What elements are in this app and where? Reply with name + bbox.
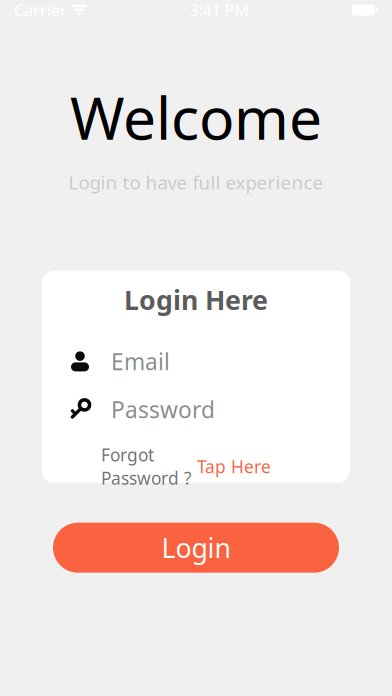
button[interactable]: Tap Here: [192, 455, 271, 478]
staticText: Login: [161, 530, 230, 565]
staticText: Login Here: [124, 282, 268, 317]
staticText: 3:41 PM: [189, 0, 249, 21]
staticText: Password: [111, 394, 215, 424]
staticText: Welcome: [70, 78, 322, 156]
staticText: Tap Here: [197, 455, 271, 478]
staticText: Forgot Password ?: [101, 443, 192, 489]
staticText: Email: [111, 346, 170, 376]
staticText: Carrier: [14, 0, 67, 21]
button[interactable]: Login: [53, 523, 339, 573]
staticText: Login to have full experience: [68, 170, 323, 195]
